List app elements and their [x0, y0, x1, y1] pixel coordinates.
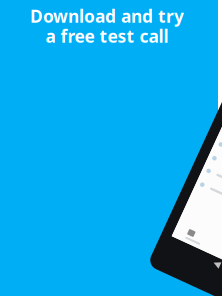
staticText: Download and try	[30, 4, 184, 27]
staticText: a free test call	[45, 24, 168, 47]
